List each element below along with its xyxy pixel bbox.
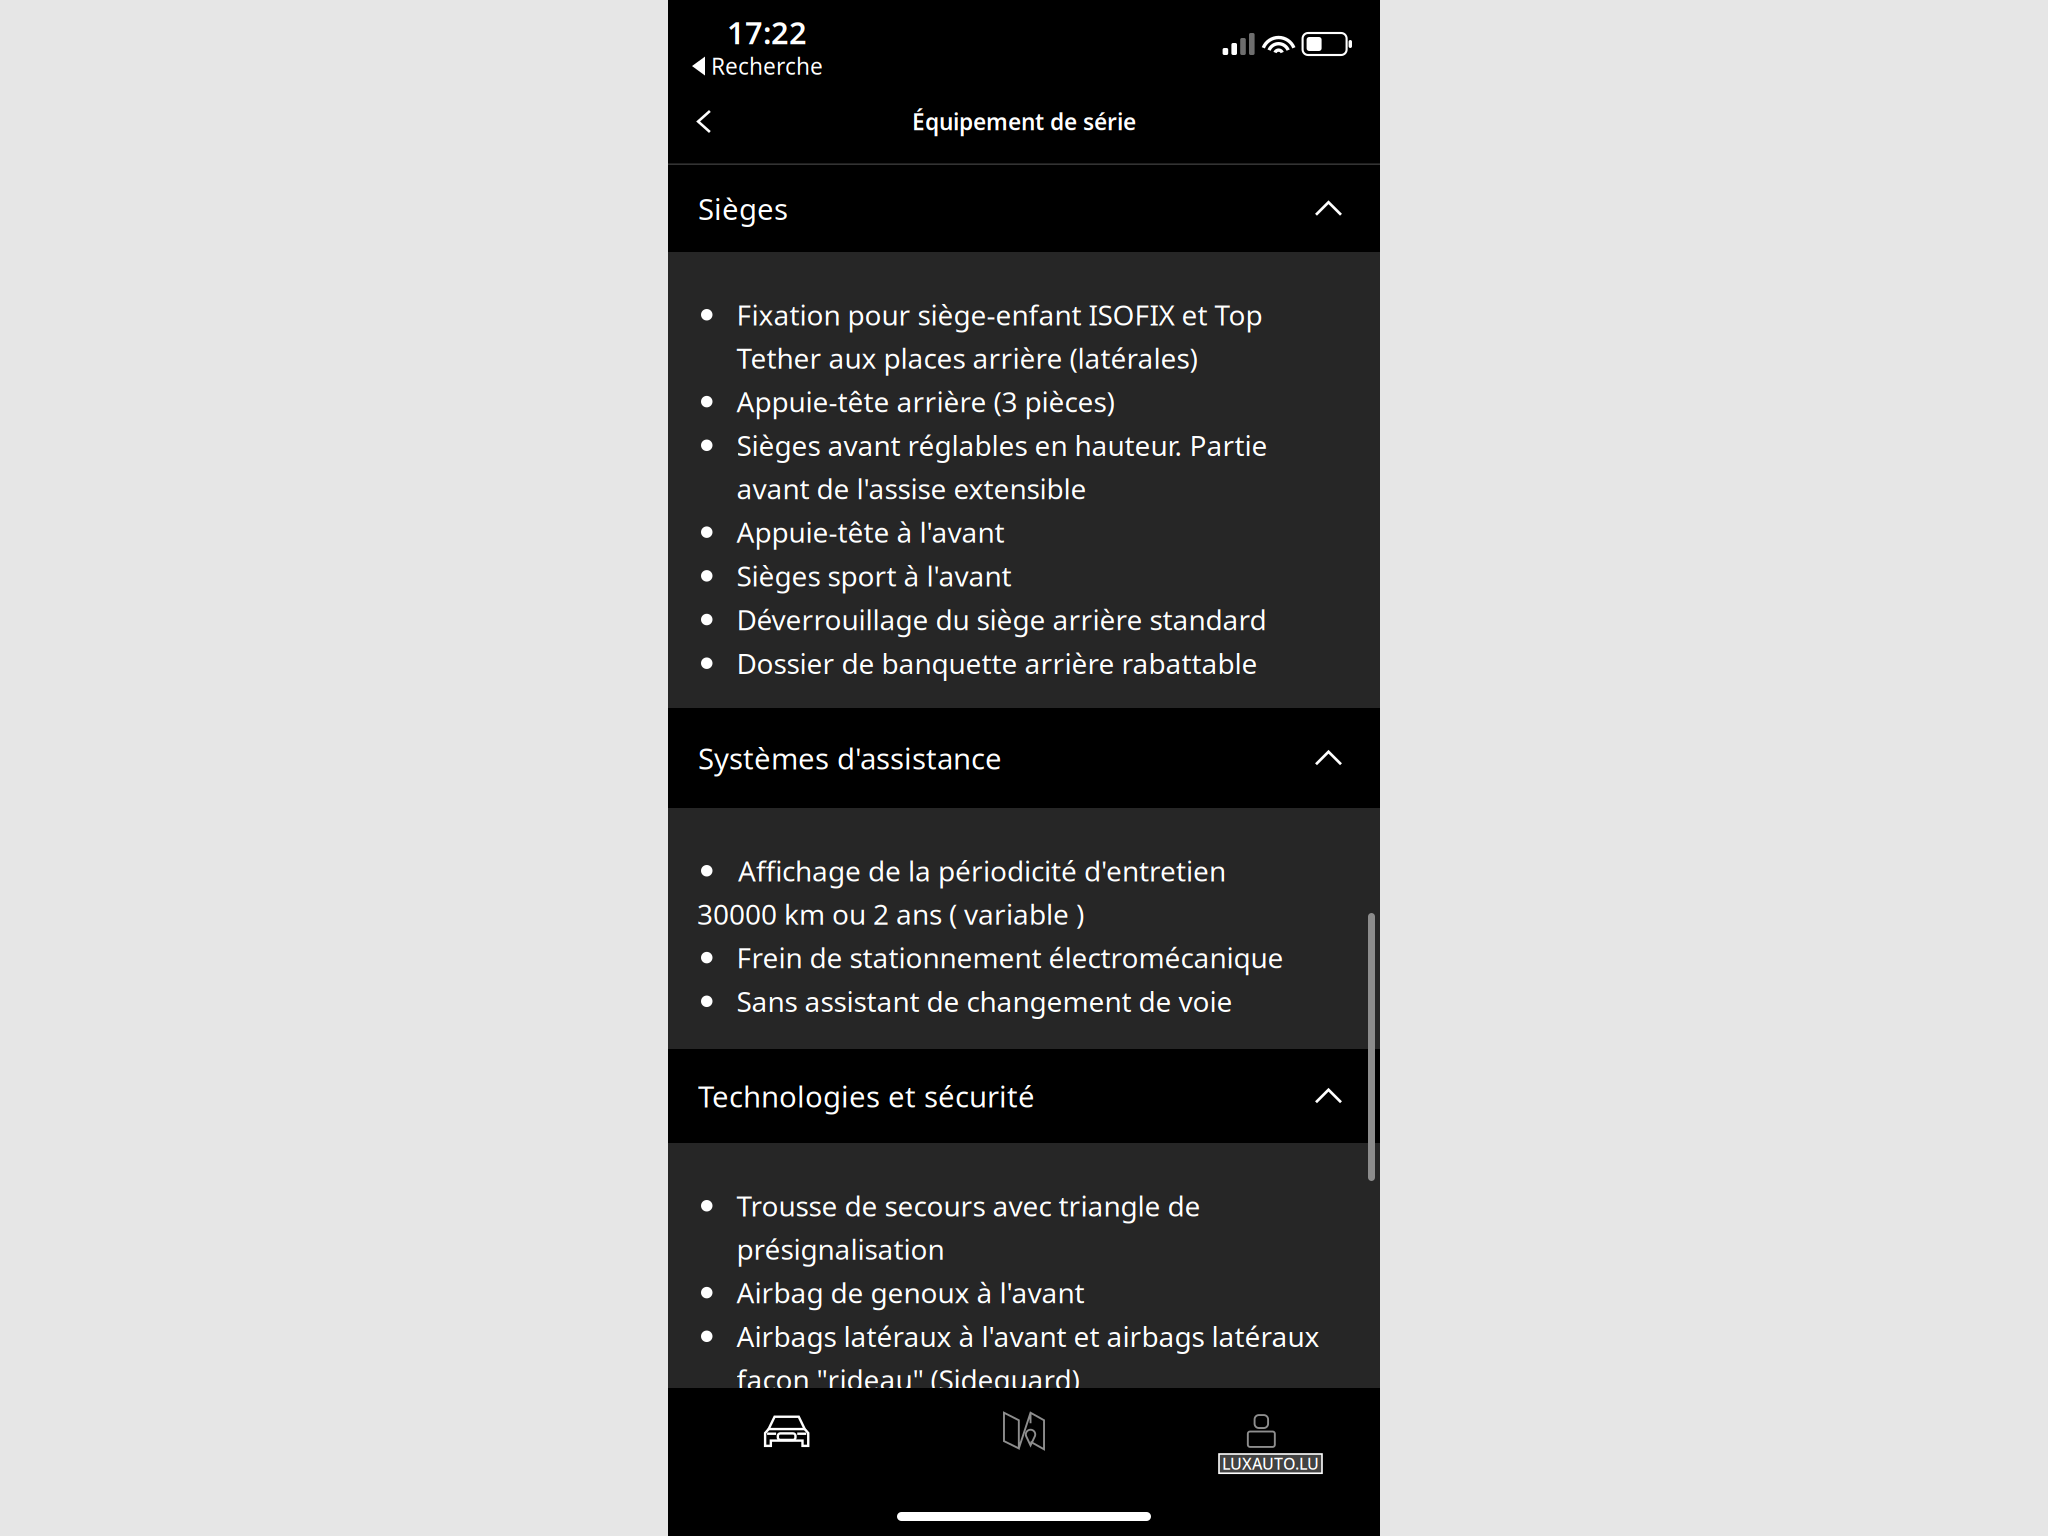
button[interactable]: Retour bbox=[668, 78, 740, 165]
button[interactable]: Sièges bbox=[668, 165, 1380, 252]
staticText: Trousse de secours avec triangle de prés… bbox=[736, 1187, 1200, 1267]
staticText: Airbags latéraux à l'avant et airbags la… bbox=[736, 1317, 1319, 1398]
staticText: Sans assistant de changement de voie bbox=[736, 982, 1232, 1020]
button[interactable]: Technologies et sécurité bbox=[668, 1049, 1380, 1143]
staticText: Recherche bbox=[711, 51, 823, 81]
staticText: Affichage de la périodicité d'entretien … bbox=[697, 852, 1226, 932]
staticText: Airbag de genoux à l'avant bbox=[736, 1274, 1084, 1311]
button[interactable]: Véhicules bbox=[668, 1400, 905, 1462]
staticText: Sièges bbox=[698, 189, 788, 228]
staticText: Sièges avant réglables en hauteur. Parti… bbox=[736, 426, 1267, 507]
staticText: LUXAUTO.LU bbox=[1222, 1453, 1319, 1474]
button[interactable]: Carte bbox=[905, 1400, 1143, 1462]
button[interactable]: Systèmes d'assistance bbox=[668, 708, 1380, 808]
staticText: Déverrouillage du siège arrière standard bbox=[736, 601, 1266, 638]
button[interactable]: Recherche bbox=[668, 0, 1380, 81]
staticText: Dossier de banquette arrière rabattable bbox=[736, 644, 1257, 682]
staticText: Sièges sport à l'avant bbox=[736, 557, 1011, 594]
staticText: Fixation pour siège-enfant ISOFIX et Top… bbox=[736, 296, 1262, 376]
staticText: 17:22 bbox=[727, 12, 807, 53]
staticText: Équipement de série bbox=[912, 106, 1136, 136]
staticText: Technologies et sécurité bbox=[698, 1076, 1035, 1115]
button[interactable]: Compte bbox=[1143, 1400, 1380, 1462]
staticText: Frein de stationnement électromécanique bbox=[736, 939, 1283, 976]
staticText: Appuie-tête à l'avant bbox=[736, 513, 1004, 551]
staticText: Appuie-tête arrière (3 pièces) bbox=[736, 383, 1114, 420]
staticText: Systèmes d'assistance bbox=[698, 738, 1002, 777]
